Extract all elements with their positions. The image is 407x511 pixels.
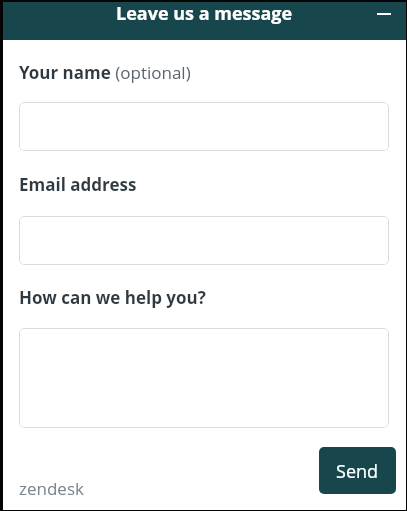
button[interactable] <box>19 328 389 428</box>
button[interactable]: Send <box>319 447 396 494</box>
staticText: Your name (optional) <box>19 61 191 84</box>
button[interactable]: Leave us a message <box>3 2 406 40</box>
staticText: zendesk <box>19 477 84 500</box>
staticText: Send <box>336 459 379 484</box>
button[interactable]: Minimize <box>375 5 393 23</box>
staticText: Leave us a message <box>116 1 293 26</box>
staticText: How can we help you? <box>19 286 206 309</box>
staticText: Email address <box>19 173 137 196</box>
button[interactable] <box>19 216 389 265</box>
button[interactable] <box>19 102 389 151</box>
